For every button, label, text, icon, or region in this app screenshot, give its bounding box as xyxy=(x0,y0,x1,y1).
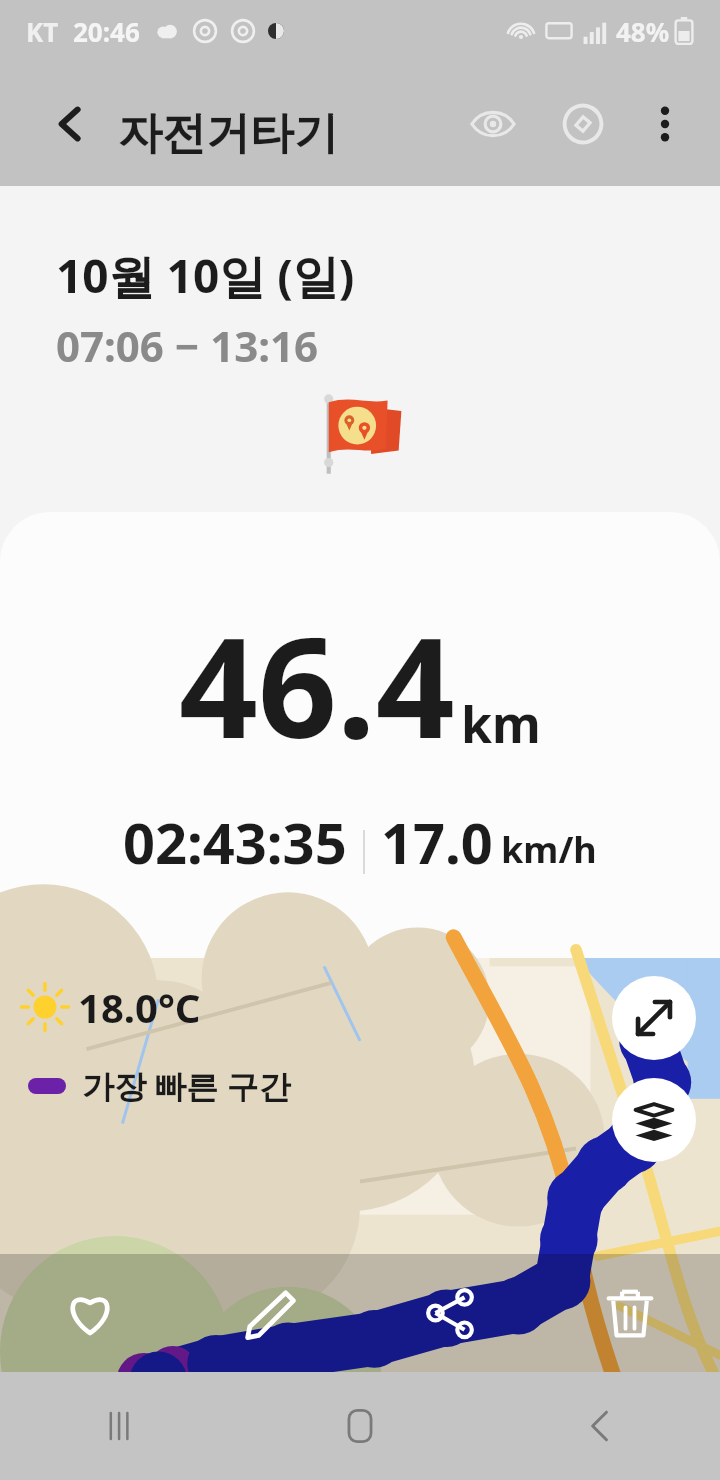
staticText: 자전거타기 xyxy=(118,106,338,161)
button[interactable]: Expand map xyxy=(612,976,696,1060)
staticText: 10월 10일 (일) xyxy=(56,244,355,307)
staticText: km xyxy=(461,690,541,758)
staticText: 02:43:35 xyxy=(123,804,347,880)
button[interactable]: Recents xyxy=(0,1372,240,1480)
button[interactable]: Favorite xyxy=(0,1254,180,1372)
staticText: 46.4 xyxy=(179,590,455,778)
button[interactable]: Sync xyxy=(546,87,620,161)
staticText: 18.0°C xyxy=(78,980,201,1034)
staticText: 48% xyxy=(616,14,670,49)
button[interactable]: Back xyxy=(480,1372,720,1480)
staticText: 가장 빠른 구간 xyxy=(82,1064,291,1108)
button[interactable]: Edit xyxy=(180,1254,360,1372)
staticText: 20:46 xyxy=(73,14,140,49)
button[interactable]: Map layers xyxy=(612,1078,696,1162)
button[interactable]: Back xyxy=(34,88,106,160)
button[interactable]: Visibility xyxy=(456,87,530,161)
staticText: km/h xyxy=(501,825,597,874)
staticText: 17.0 xyxy=(381,804,493,880)
button[interactable]: Delete xyxy=(540,1254,720,1372)
button[interactable]: Home xyxy=(240,1372,480,1480)
staticText: KT xyxy=(26,14,59,49)
button[interactable]: Share xyxy=(360,1254,540,1372)
staticText: 07:06 − 13:16 xyxy=(56,317,319,374)
button[interactable]: More options xyxy=(632,91,698,157)
button[interactable]: 46.4 xyxy=(0,512,720,958)
